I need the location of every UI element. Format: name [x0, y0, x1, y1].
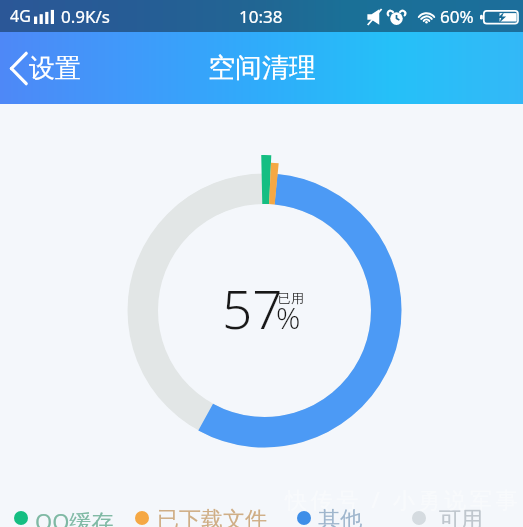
other: Mute [366, 9, 383, 25]
button[interactable]: QQ缓存 [14, 506, 114, 527]
staticText: 空间清理 [208, 51, 316, 85]
button[interactable]: Back [0, 44, 93, 93]
staticText: 4G [10, 5, 31, 27]
other: Battery 60 percent [480, 9, 518, 25]
staticText: 0.9K/s [61, 5, 110, 28]
staticText: 可用 [439, 506, 483, 527]
other: Back [8, 52, 27, 85]
button[interactable]: 已下载文件 [135, 506, 267, 527]
staticText: QQ缓存 [35, 506, 114, 527]
staticText: 57 [222, 272, 283, 344]
other: Alarm [389, 9, 404, 25]
staticText: % [276, 297, 301, 338]
button[interactable]: 可用 [412, 506, 483, 527]
staticText: 60% [440, 5, 474, 28]
button[interactable]: 其他 [297, 506, 362, 527]
staticText: 10:38 [239, 5, 283, 28]
staticText: 已用 [278, 290, 304, 306]
staticText: 已下载文件 [157, 506, 267, 527]
staticText: 设置 [29, 52, 81, 85]
staticText: 其他 [318, 506, 362, 527]
staticText: 快传号 / 小勇说军事 [285, 484, 522, 514]
